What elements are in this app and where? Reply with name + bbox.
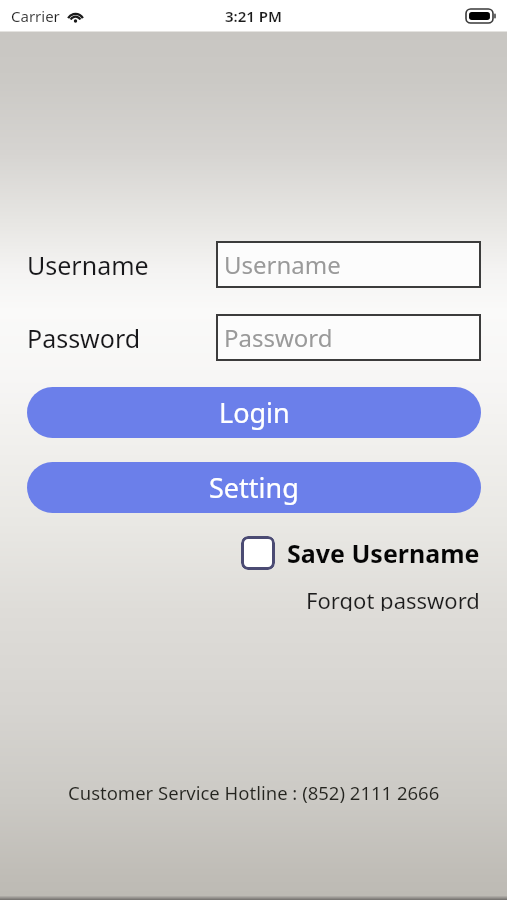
staticText: Password: [27, 321, 141, 355]
staticText: Save Username: [287, 536, 480, 570]
staticText: Password: [224, 321, 333, 354]
staticText: Setting: [209, 469, 299, 506]
staticText: 3:21 PM: [225, 6, 282, 26]
button[interactable]: Login: [27, 387, 481, 438]
staticText: Customer Service Hotline : (852) 2111 26…: [68, 780, 440, 805]
staticText: Carrier: [11, 6, 60, 26]
staticText: Username: [27, 248, 149, 282]
button[interactable]: Save Username: [239, 534, 482, 572]
button[interactable]: Forgot password: [303, 583, 483, 613]
staticText: Forgot password: [306, 585, 480, 611]
staticText: Login: [219, 394, 290, 431]
button[interactable]: Setting: [27, 462, 481, 513]
button[interactable]: Username: [216, 241, 481, 288]
staticText: Username: [224, 248, 341, 281]
button[interactable]: Password: [216, 314, 481, 361]
